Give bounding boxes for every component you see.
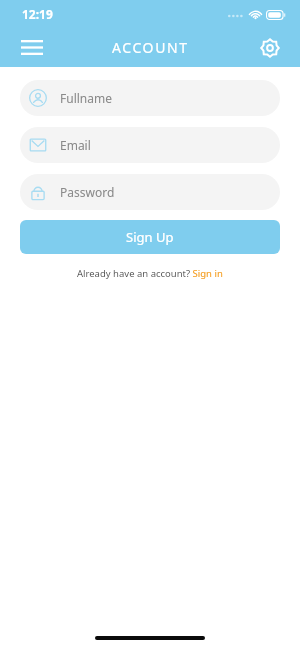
staticText: Fullname <box>60 90 112 106</box>
button[interactable]: Password <box>20 174 280 210</box>
button[interactable]: Email <box>20 127 280 163</box>
staticText: ACCOUNT <box>112 38 189 57</box>
button[interactable]: Settings <box>250 28 290 67</box>
staticText: Password <box>60 184 115 200</box>
staticText: Sign Up <box>126 228 174 246</box>
staticText: Already have an account? Sign in <box>77 267 223 280</box>
button[interactable]: Menu <box>12 28 52 67</box>
button[interactable]: Already have an account? Sign in <box>73 265 227 282</box>
staticText: 12:19 <box>22 6 53 22</box>
button[interactable]: Sign Up <box>20 220 280 254</box>
button[interactable]: Fullname <box>20 80 280 116</box>
staticText: Email <box>60 137 91 153</box>
